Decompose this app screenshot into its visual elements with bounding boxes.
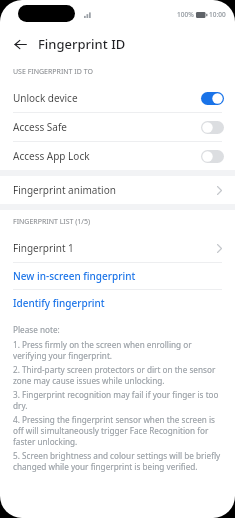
staticText: New in-screen fingerprint [13,269,136,283]
staticText: Access Safe [13,120,201,134]
button[interactable]: Back [8,32,32,56]
staticText: Fingerprint animation [13,183,217,197]
staticText: FINGERPRINT LIST (1/5) [13,217,91,227]
button[interactable]: Unlock device [0,84,235,112]
staticText: USE FINGERPRINT ID TO [13,67,93,77]
staticText: 3. Fingerprint recognition may fail if y… [13,389,224,411]
button[interactable]: Access Safe [0,113,235,141]
staticText: 5. Screen brightness and colour settings… [13,450,224,472]
button[interactable]: Identify fingerprint [0,290,235,316]
button[interactable]: Access App Lock [0,142,235,170]
staticText: Please note: [13,324,60,335]
button[interactable]: Fingerprint animation [0,176,235,204]
button[interactable]: Fingerprint 1 [0,234,235,262]
staticText: 2. Third-party screen protectors or dirt… [13,364,224,386]
staticText: Fingerprint ID [38,35,126,53]
staticText: Access App Lock [13,149,201,163]
staticText: 10:00 [209,10,226,19]
staticText: 100% [177,10,194,19]
staticText: Identify fingerprint [13,296,105,310]
button[interactable]: New in-screen fingerprint [0,263,235,289]
staticText: Unlock device [13,91,201,105]
staticText: 1. Press firmly on the screen when enrol… [13,339,224,361]
staticText: Fingerprint 1 [13,241,217,255]
staticText: 4. Pressing the fingerprint sensor when … [13,414,224,447]
